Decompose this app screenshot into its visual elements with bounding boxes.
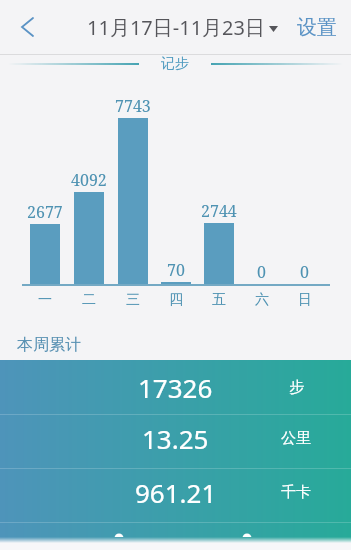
staticText: 0	[257, 261, 266, 283]
staticText: 4092	[71, 169, 107, 191]
button[interactable]: 11月17日-11月23日	[87, 14, 278, 41]
staticText: 17326	[138, 370, 213, 405]
staticText: 四	[169, 291, 183, 309]
staticText: 11月17日-11月23日	[87, 14, 265, 41]
button[interactable]: 设置	[297, 15, 337, 40]
staticText: 一	[38, 291, 52, 309]
button[interactable]: 17326	[0, 360, 351, 414]
staticText: 五	[212, 291, 226, 309]
staticText: 步	[289, 378, 304, 397]
button[interactable]: 13.25	[0, 415, 351, 468]
staticText: 记步	[161, 55, 189, 72]
staticText: 2744	[201, 200, 237, 222]
staticText: 本周累计	[17, 335, 81, 355]
staticText: 0	[300, 261, 309, 283]
staticText: 二	[82, 291, 96, 309]
staticText: 日	[298, 291, 312, 309]
staticText: 2677	[27, 201, 63, 223]
staticText: 六	[255, 291, 269, 309]
staticText: 961.21	[135, 475, 217, 510]
staticText: 千卡	[281, 483, 311, 502]
staticText: 70	[167, 259, 185, 281]
staticText: 13.25	[142, 421, 209, 456]
staticText: 三	[126, 291, 140, 309]
staticText: 7743	[115, 95, 151, 117]
staticText: 公里	[281, 429, 311, 448]
button[interactable]: 961.21	[0, 469, 351, 522]
button[interactable]	[10, 10, 44, 44]
staticText: 设置	[297, 15, 337, 40]
